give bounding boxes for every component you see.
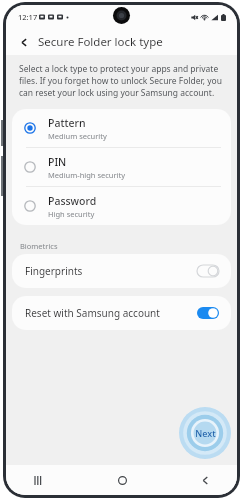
button[interactable]: Reset with Samsung account [12, 296, 231, 330]
staticText: Secure Folder lock type [38, 34, 163, 50]
button[interactable]: Password [12, 187, 231, 225]
staticText: Password [48, 194, 97, 208]
staticText: Pattern [48, 116, 86, 130]
button[interactable]: Next [179, 407, 231, 459]
staticText: Next [195, 427, 216, 439]
staticText: Reset with Samsung account [25, 306, 197, 320]
staticText: Select a lock type to protect your apps … [19, 63, 224, 99]
staticText: 12:17 [18, 12, 38, 22]
staticText: PIN [48, 155, 67, 169]
button[interactable]: Home [112, 470, 132, 490]
button[interactable]: Pattern [12, 109, 231, 147]
button[interactable]: Recent apps [28, 470, 48, 490]
button[interactable]: Fingerprints [12, 254, 231, 288]
button[interactable]: Back [195, 470, 215, 490]
staticText: Fingerprints [25, 264, 197, 278]
button[interactable]: Back [14, 32, 34, 52]
staticText: Biometrics [20, 241, 58, 251]
staticText: Medium-high security [48, 170, 126, 180]
staticText: High security [48, 209, 95, 219]
button[interactable]: PIN [12, 148, 231, 186]
staticText: Medium security [48, 131, 107, 141]
